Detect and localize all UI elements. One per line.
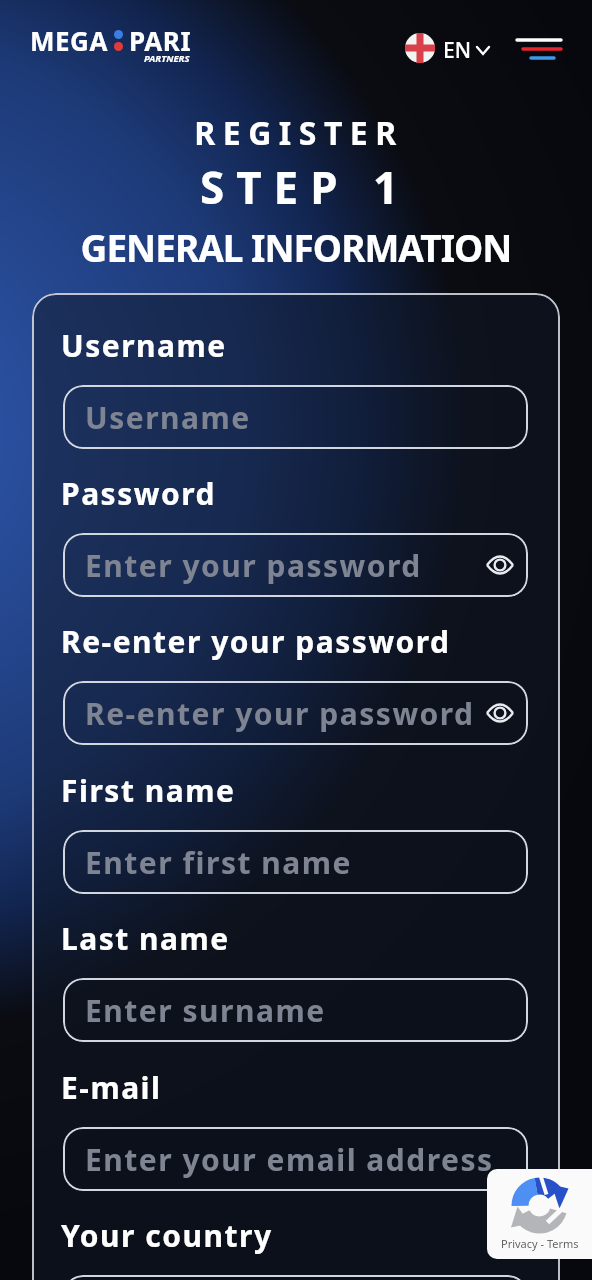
staticText: EN bbox=[443, 36, 471, 65]
staticText: Username bbox=[85, 397, 251, 438]
staticText: PARTNERS bbox=[144, 52, 190, 65]
button[interactable]: Username bbox=[63, 385, 528, 449]
staticText: E-mail bbox=[61, 1067, 162, 1107]
staticText: REGISTER bbox=[3, 111, 592, 155]
staticText: MEGA bbox=[30, 23, 108, 58]
staticText: Re-enter your password bbox=[85, 693, 475, 734]
staticText: Last name bbox=[61, 918, 230, 958]
button[interactable]: Enter first name bbox=[63, 830, 528, 894]
staticText: STEP 1 bbox=[9, 157, 592, 217]
staticText: GENERAL INFORMATION bbox=[0, 222, 592, 272]
staticText: Privacy - Terms bbox=[501, 1236, 579, 1251]
staticText: PARI bbox=[129, 23, 192, 58]
staticText: Enter surname bbox=[85, 990, 326, 1031]
staticText: Username bbox=[61, 325, 227, 365]
staticText: Re-enter your password bbox=[61, 621, 451, 661]
button[interactable] bbox=[510, 34, 566, 64]
button[interactable]: Enter surname bbox=[63, 978, 528, 1042]
staticText: Enter your email address bbox=[85, 1139, 494, 1180]
button[interactable]: Enter your email address bbox=[63, 1127, 528, 1191]
button[interactable]: EN bbox=[405, 33, 489, 63]
staticText: First name bbox=[61, 770, 236, 810]
button[interactable]: Re-enter your password bbox=[63, 681, 528, 745]
button[interactable]: Privacy - Terms bbox=[487, 1169, 592, 1259]
button[interactable] bbox=[63, 1275, 528, 1280]
staticText: Enter your password bbox=[85, 545, 422, 586]
staticText: Password bbox=[61, 473, 216, 513]
button[interactable]: Enter your password bbox=[63, 533, 528, 597]
staticText: Enter first name bbox=[85, 842, 352, 883]
button[interactable]: MEGA bbox=[30, 23, 192, 58]
staticText: Your country bbox=[61, 1215, 273, 1255]
